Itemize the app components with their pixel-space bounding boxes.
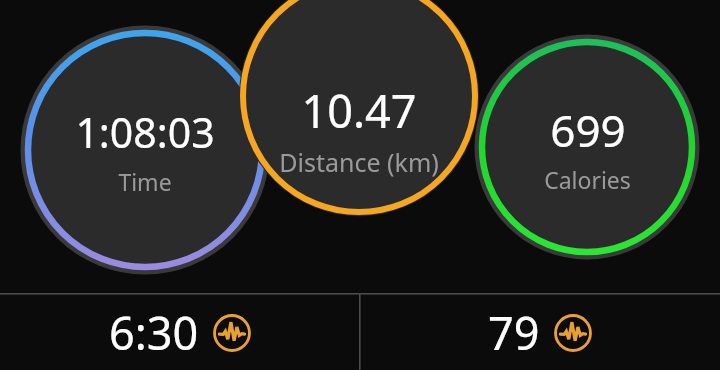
staticText: 1:08:03 (75, 104, 215, 160)
staticText: Calories (544, 164, 631, 195)
other: Heart rate sensor (554, 314, 592, 352)
staticText: Time (118, 166, 172, 197)
button[interactable]: 699 (482, 42, 692, 252)
staticText: 10.47 (301, 80, 417, 141)
staticText: 699 (550, 100, 626, 160)
staticText: 6:30 (109, 302, 199, 363)
button[interactable]: 6:30 (0, 295, 360, 370)
button[interactable]: 79 (360, 295, 720, 370)
staticText: Distance (km) (279, 145, 439, 179)
other: Average pace heart rate sensor (213, 314, 251, 352)
button[interactable]: 1:08:03 (28, 33, 262, 267)
button[interactable]: 10.47 (243, 0, 475, 212)
staticText: 79 (488, 302, 540, 363)
